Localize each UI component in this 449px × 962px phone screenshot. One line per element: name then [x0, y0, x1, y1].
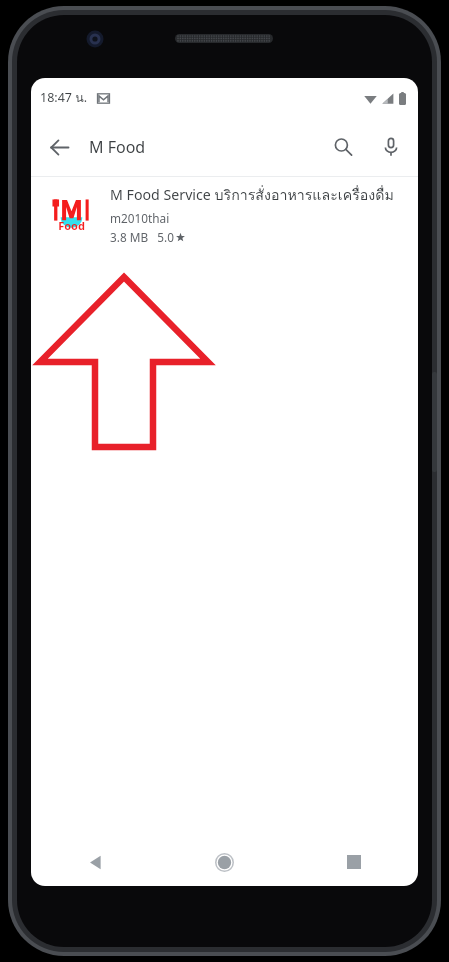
staticText: M Food Service บริการสั่งอาหารและเครื่อง…	[110, 184, 394, 207]
staticText: Food	[58, 218, 85, 233]
button[interactable]: M Food	[89, 123, 293, 171]
staticText: m2010thai	[110, 210, 170, 226]
staticText: M Food	[89, 136, 146, 158]
button[interactable]: Back	[39, 127, 79, 167]
button[interactable]: Voice search	[369, 125, 413, 169]
button[interactable]: Home	[160, 838, 289, 886]
staticText: 18:47 น.	[40, 88, 88, 108]
button[interactable]: Search	[321, 125, 365, 169]
button[interactable]: Back	[31, 838, 160, 886]
staticText: 3.8 MB 5.0	[110, 229, 174, 245]
button[interactable]: Recent apps	[289, 838, 418, 886]
button[interactable]: Food	[31, 177, 418, 251]
